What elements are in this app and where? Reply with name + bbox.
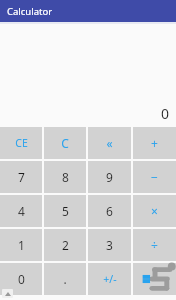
button[interactable]: Equals bbox=[133, 263, 176, 295]
button[interactable]: ÷ bbox=[133, 229, 176, 261]
button[interactable]: 7 bbox=[0, 161, 42, 193]
button[interactable]: CE bbox=[0, 127, 42, 159]
staticText: . bbox=[63, 271, 67, 287]
button[interactable]: + bbox=[133, 127, 176, 159]
staticText: + bbox=[151, 135, 158, 151]
staticText: 9 bbox=[106, 169, 113, 185]
staticText: 0 bbox=[160, 104, 169, 123]
staticText: +/- bbox=[103, 272, 117, 286]
button[interactable]: 6 bbox=[88, 195, 131, 227]
staticText: × bbox=[151, 203, 158, 219]
button[interactable]: − bbox=[133, 161, 176, 193]
staticText: 6 bbox=[106, 203, 113, 219]
button[interactable]: 4 bbox=[0, 195, 42, 227]
staticText: 4 bbox=[18, 203, 25, 219]
staticText: ÷ bbox=[151, 237, 158, 253]
staticText: 2 bbox=[62, 237, 69, 253]
staticText: 8 bbox=[62, 169, 69, 185]
staticText: C bbox=[61, 135, 69, 151]
button[interactable]: « bbox=[88, 127, 131, 159]
button[interactable]: +/- bbox=[88, 263, 131, 295]
button[interactable]: 0 bbox=[0, 263, 42, 295]
button[interactable]: × bbox=[133, 195, 176, 227]
staticText: Calculator bbox=[7, 5, 53, 18]
button[interactable]: 2 bbox=[44, 229, 86, 261]
staticText: 5 bbox=[62, 203, 69, 219]
button[interactable]: . bbox=[44, 263, 86, 295]
button[interactable]: 8 bbox=[44, 161, 86, 193]
button[interactable]: 9 bbox=[88, 161, 131, 193]
button[interactable]: 1 bbox=[0, 229, 42, 261]
button[interactable]: Show keyboard bbox=[2, 289, 13, 298]
staticText: 3 bbox=[106, 237, 113, 253]
button[interactable]: 3 bbox=[88, 229, 131, 261]
staticText: 7 bbox=[18, 169, 25, 185]
button[interactable]: C bbox=[44, 127, 86, 159]
staticText: CE bbox=[15, 136, 28, 150]
staticText: − bbox=[151, 169, 158, 185]
staticText: 0 bbox=[18, 271, 25, 287]
staticText: 1 bbox=[18, 237, 25, 253]
button[interactable]: 5 bbox=[44, 195, 86, 227]
staticText: « bbox=[106, 135, 113, 151]
